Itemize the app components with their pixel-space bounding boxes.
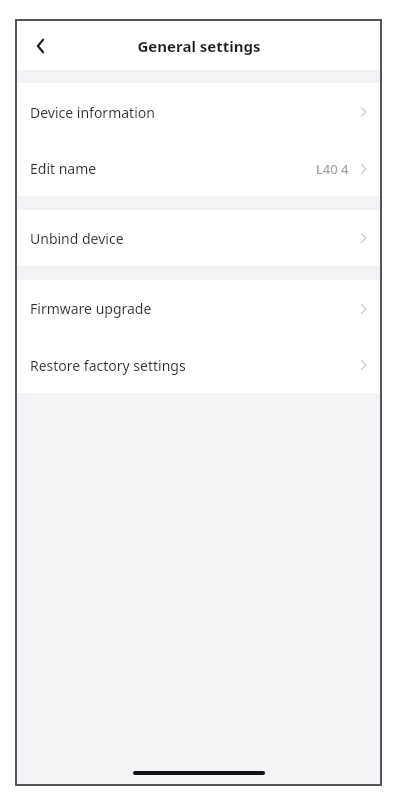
- button[interactable]: Unbind device: [17, 210, 380, 266]
- staticText: Unbind device: [30, 229, 124, 248]
- button[interactable]: Restore factory settings: [17, 337, 380, 393]
- staticText: Device information: [30, 103, 155, 122]
- staticText: Firmware upgrade: [30, 299, 152, 318]
- staticText: General settings: [137, 36, 261, 56]
- staticText: Restore factory settings: [30, 356, 186, 375]
- button[interactable]: Firmware upgrade: [17, 280, 380, 337]
- button[interactable]: Back: [22, 27, 60, 65]
- button[interactable]: Device information: [17, 83, 380, 141]
- staticText: Edit name: [30, 159, 97, 178]
- staticText: L40 4: [316, 160, 349, 178]
- button[interactable]: Edit name: [17, 141, 380, 196]
